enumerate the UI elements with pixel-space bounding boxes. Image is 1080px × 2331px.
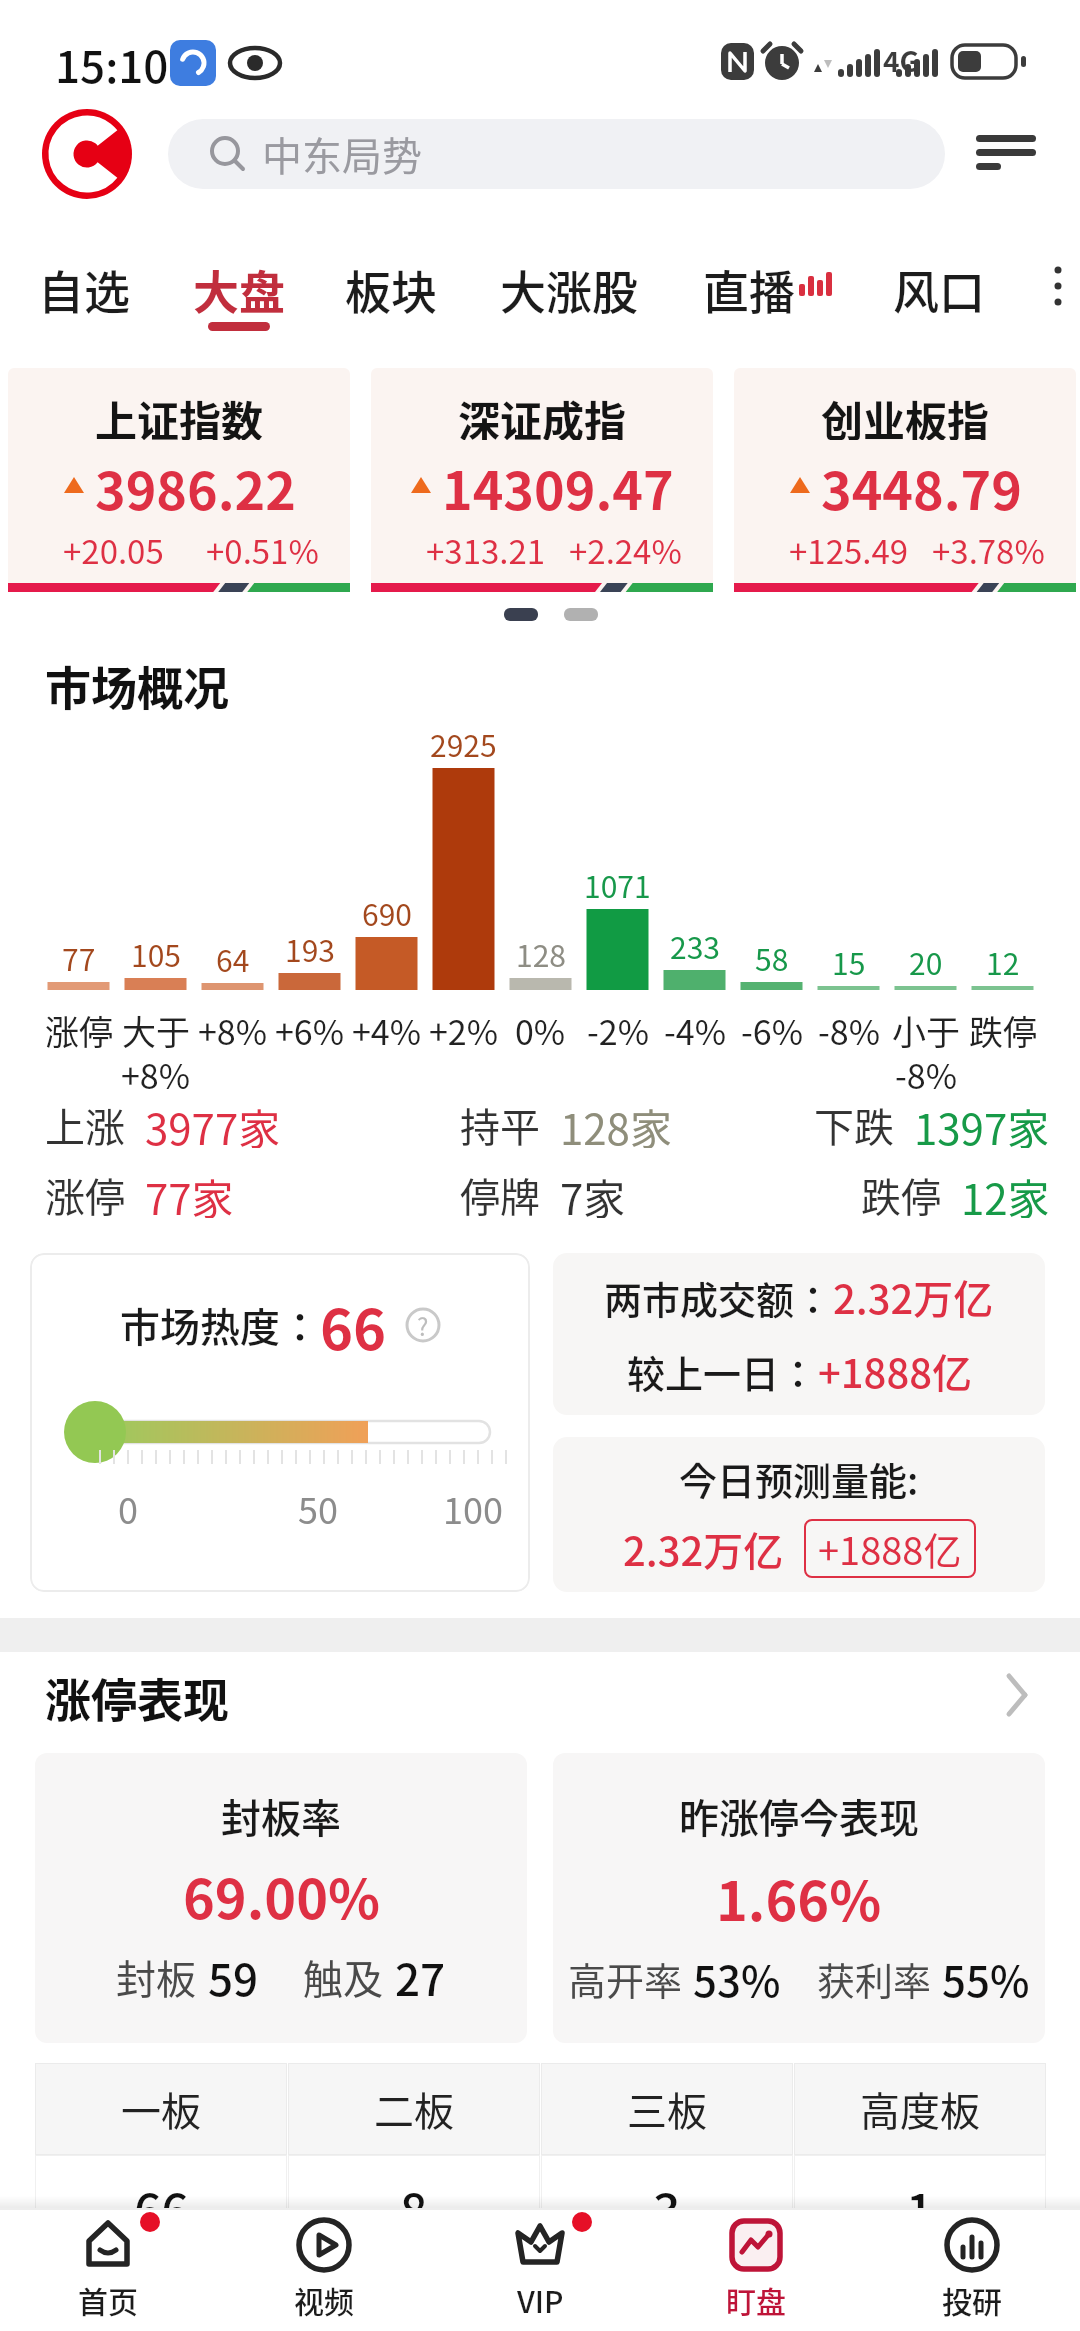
staticText: 1	[906, 2173, 934, 2243]
button[interactable]: 板块	[333, 248, 449, 332]
staticText: 视频	[294, 2278, 354, 2318]
staticText: -8%	[818, 1006, 880, 1048]
button[interactable]: 封板率	[35, 1753, 527, 2043]
staticText: +20.05	[63, 526, 164, 572]
button[interactable]	[887, 2210, 1057, 2330]
staticText: 封板	[116, 1948, 196, 2006]
button[interactable]: 中东局势	[168, 119, 945, 189]
staticText: 15:10	[55, 32, 169, 96]
staticText: +8%	[198, 1006, 268, 1048]
staticText: 两市成交额：	[604, 1270, 833, 1325]
button[interactable]: 今日预测量能:	[553, 1437, 1045, 1592]
staticText: 跌停	[969, 1006, 1037, 1048]
staticText: -4%	[664, 1006, 726, 1048]
staticText: 1.66%	[716, 1858, 882, 1936]
staticText: 大涨股	[500, 256, 638, 323]
staticText: 高开率	[568, 1951, 683, 2006]
button[interactable]: 风口	[881, 248, 997, 332]
button[interactable]	[8, 368, 350, 592]
staticText: +1888亿	[818, 1521, 962, 1576]
staticText: 涨停表现	[45, 1664, 229, 1731]
button[interactable]: 一板	[35, 2063, 287, 2155]
staticText: 690	[362, 891, 412, 929]
staticText: ?	[417, 1308, 429, 1343]
staticText: 市场概况	[45, 652, 229, 719]
staticText: 27	[395, 1945, 446, 2009]
staticText: 64	[216, 937, 250, 975]
button[interactable]: 大盘	[181, 248, 297, 332]
staticText: 跌停	[861, 1166, 941, 1218]
button[interactable]: 三板	[541, 2063, 793, 2155]
staticText: 77	[62, 936, 96, 974]
staticText: 2.32万亿	[623, 1520, 784, 1578]
staticText: 深证成指	[458, 388, 627, 440]
staticText: 首页	[78, 2278, 138, 2318]
staticText: +8%	[121, 1050, 191, 1092]
staticText: +0.51%	[206, 526, 319, 572]
button[interactable]: 高度板	[794, 2063, 1046, 2155]
staticText: 14309.47	[442, 450, 674, 520]
staticText: +6%	[275, 1006, 345, 1048]
staticText: 一板	[121, 2080, 201, 2138]
button[interactable]: 自选	[26, 248, 142, 332]
staticText: 50	[298, 1482, 338, 1528]
button[interactable]: 昨涨停今表现	[553, 1753, 1045, 2043]
staticText: 大于	[122, 1006, 190, 1048]
staticText: 涨停	[45, 1006, 113, 1048]
button[interactable]: 大涨股	[488, 248, 650, 332]
staticText: 77家	[145, 1166, 234, 1218]
staticText: 小于	[892, 1006, 960, 1048]
staticText: +4%	[352, 1006, 422, 1048]
staticText: 3448.79	[821, 450, 1022, 520]
staticText: 三板	[627, 2080, 707, 2138]
staticText: 3	[653, 2173, 681, 2243]
button[interactable]	[0, 1658, 1080, 1738]
staticText: 中东局势	[262, 125, 422, 183]
staticText: -6%	[741, 1006, 803, 1048]
staticText: +2%	[429, 1006, 499, 1048]
staticText: -8%	[895, 1050, 957, 1092]
staticText: 20	[909, 940, 943, 978]
staticText: 12	[986, 940, 1020, 978]
staticText: 2.32万亿	[833, 1268, 994, 1326]
staticText: 3977家	[145, 1096, 281, 1148]
staticText: +125.49	[789, 526, 909, 572]
staticText: 上涨	[45, 1096, 125, 1148]
button[interactable]	[30, 1253, 530, 1592]
button[interactable]: 直播	[691, 248, 807, 332]
staticText: 7家	[560, 1166, 626, 1218]
staticText: 128	[516, 932, 566, 970]
staticText: 高度板	[860, 2080, 980, 2138]
staticText: 0	[118, 1482, 138, 1528]
staticText: 获利率	[817, 1951, 932, 2006]
staticText: 3986.22	[95, 450, 296, 520]
staticText: 55%	[942, 1948, 1030, 2009]
button[interactable]: 两市成交额：	[553, 1253, 1045, 1415]
staticText: 58	[755, 936, 789, 974]
staticText: 较上一日：	[627, 1344, 818, 1399]
staticText: 持平	[460, 1096, 540, 1148]
staticText: 停牌	[460, 1166, 540, 1218]
button[interactable]	[734, 368, 1076, 592]
button[interactable]	[23, 2210, 193, 2330]
staticText: +3.78%	[932, 526, 1045, 572]
button[interactable]	[966, 122, 1046, 184]
button[interactable]	[671, 2210, 841, 2330]
staticText: 风口	[893, 256, 985, 323]
staticText: 53%	[693, 1948, 781, 2009]
staticText: 128家	[560, 1096, 672, 1148]
button[interactable]	[371, 368, 713, 592]
button[interactable]: 二板	[288, 2063, 540, 2155]
staticText: 15	[832, 940, 866, 978]
staticText: +2.24%	[569, 526, 682, 572]
staticText: 59	[208, 1945, 259, 2009]
button[interactable]	[455, 2210, 625, 2330]
staticText: 板块	[345, 256, 437, 323]
staticText: 下跌	[814, 1096, 894, 1148]
staticText: 105	[131, 932, 181, 970]
staticText: 8	[400, 2173, 428, 2243]
staticText: 创业板指	[821, 388, 990, 440]
staticText: VIP	[517, 2278, 564, 2318]
staticText: 193	[285, 927, 335, 965]
button[interactable]	[239, 2210, 409, 2330]
